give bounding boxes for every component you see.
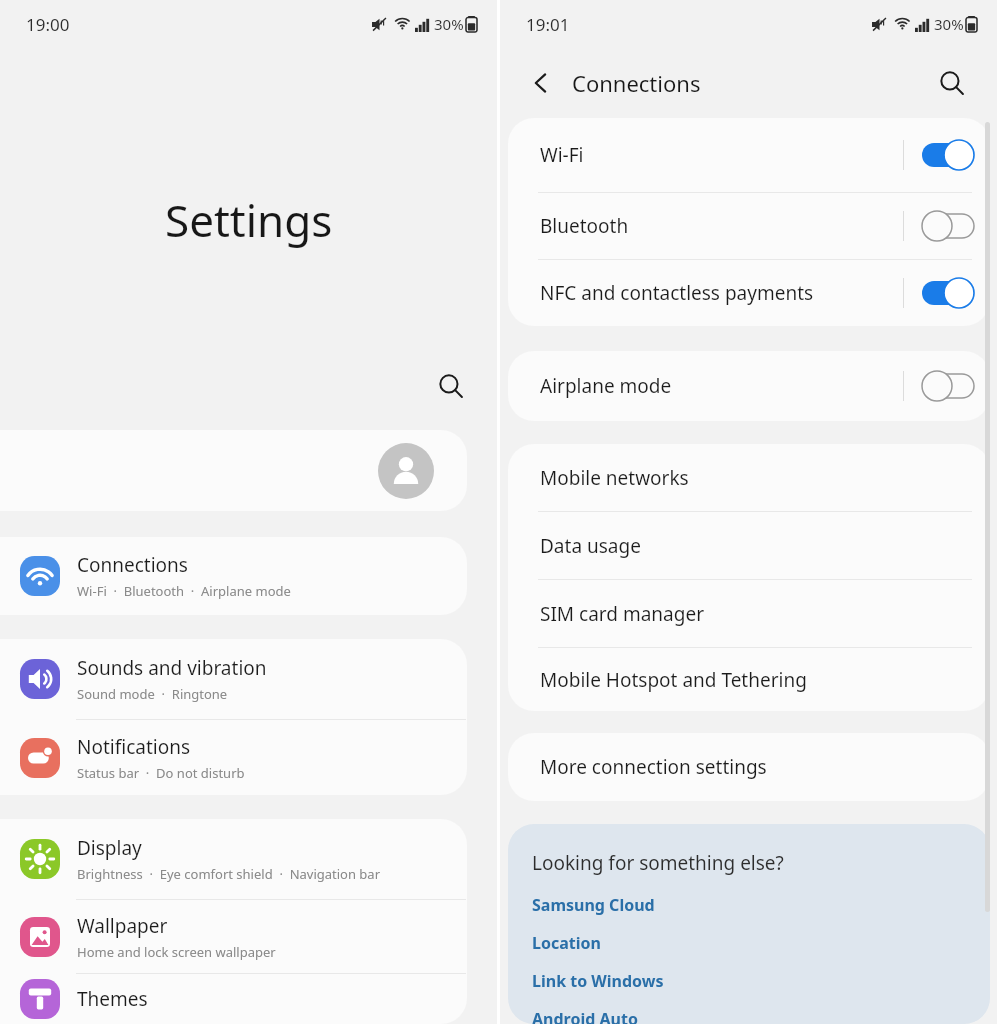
staticText: Connections (572, 68, 701, 98)
button[interactable]: Notifications (0, 720, 467, 795)
button[interactable]: Wallpaper (0, 900, 467, 973)
staticText: Location (532, 932, 601, 954)
staticText: Themes (77, 986, 148, 1012)
staticText: 19:00 (26, 13, 70, 36)
button[interactable]: NFC and contactless payments (508, 260, 990, 326)
button[interactable]: Data usage (508, 512, 990, 579)
button[interactable]: Airplane mode (508, 351, 990, 421)
staticText: Wi-Fi (540, 142, 903, 168)
staticText: Brightness · Eye comfort shield · Naviga… (77, 865, 381, 883)
staticText: Mobile networks (540, 465, 689, 491)
button[interactable]: Search (931, 62, 973, 104)
staticText: Link to Windows (532, 970, 664, 992)
button[interactable]: Mobile Hotspot and Tethering (508, 648, 990, 711)
staticText: Wallpaper (77, 913, 168, 939)
staticText: NFC and contactless payments (540, 280, 903, 306)
staticText: Samsung Cloud (532, 894, 655, 916)
staticText: Display (77, 835, 142, 861)
staticText: Android Auto (532, 1008, 638, 1024)
staticText: Wi-Fi · Bluetooth · Airplane mode (77, 582, 291, 600)
button[interactable]: Display (0, 819, 467, 899)
staticText: Home and lock screen wallpaper (77, 943, 276, 961)
button[interactable]: SIM card manager (508, 580, 990, 647)
staticText: Settings (165, 190, 333, 250)
button[interactable]: Back (524, 66, 701, 100)
other: Back (524, 66, 558, 100)
button[interactable]: Connections (0, 537, 467, 615)
button[interactable]: Search (429, 364, 473, 408)
button[interactable]: Mobile networks (508, 444, 990, 511)
staticText: Sounds and vibration (77, 655, 267, 681)
staticText: Airplane mode (540, 373, 903, 399)
staticText: More connection settings (540, 754, 767, 780)
staticText: 19:01 (526, 13, 570, 36)
staticText: Connections (77, 552, 188, 578)
staticText: Data usage (540, 533, 641, 559)
button[interactable] (0, 430, 467, 511)
staticText: Notifications (77, 734, 191, 760)
staticText: Sound mode · Ringtone (77, 685, 228, 703)
button[interactable]: Android Auto (532, 1008, 638, 1024)
button[interactable]: Bluetooth (508, 193, 990, 259)
staticText: Status bar · Do not disturb (77, 764, 245, 782)
button[interactable]: More connection settings (508, 733, 990, 801)
staticText: SIM card manager (540, 601, 704, 627)
button[interactable]: Sounds and vibration (0, 639, 467, 719)
button[interactable]: Wi-Fi (508, 118, 990, 192)
staticText: Looking for something else? (532, 850, 784, 876)
staticText: 30% (434, 14, 464, 34)
button[interactable]: Location (532, 932, 601, 954)
staticText: Bluetooth (540, 213, 903, 239)
staticText: 30% (934, 14, 964, 34)
button[interactable]: Themes (0, 974, 467, 1024)
button[interactable]: Link to Windows (532, 970, 664, 992)
staticText: Mobile Hotspot and Tethering (540, 667, 807, 693)
button[interactable]: Samsung Cloud (532, 894, 655, 916)
